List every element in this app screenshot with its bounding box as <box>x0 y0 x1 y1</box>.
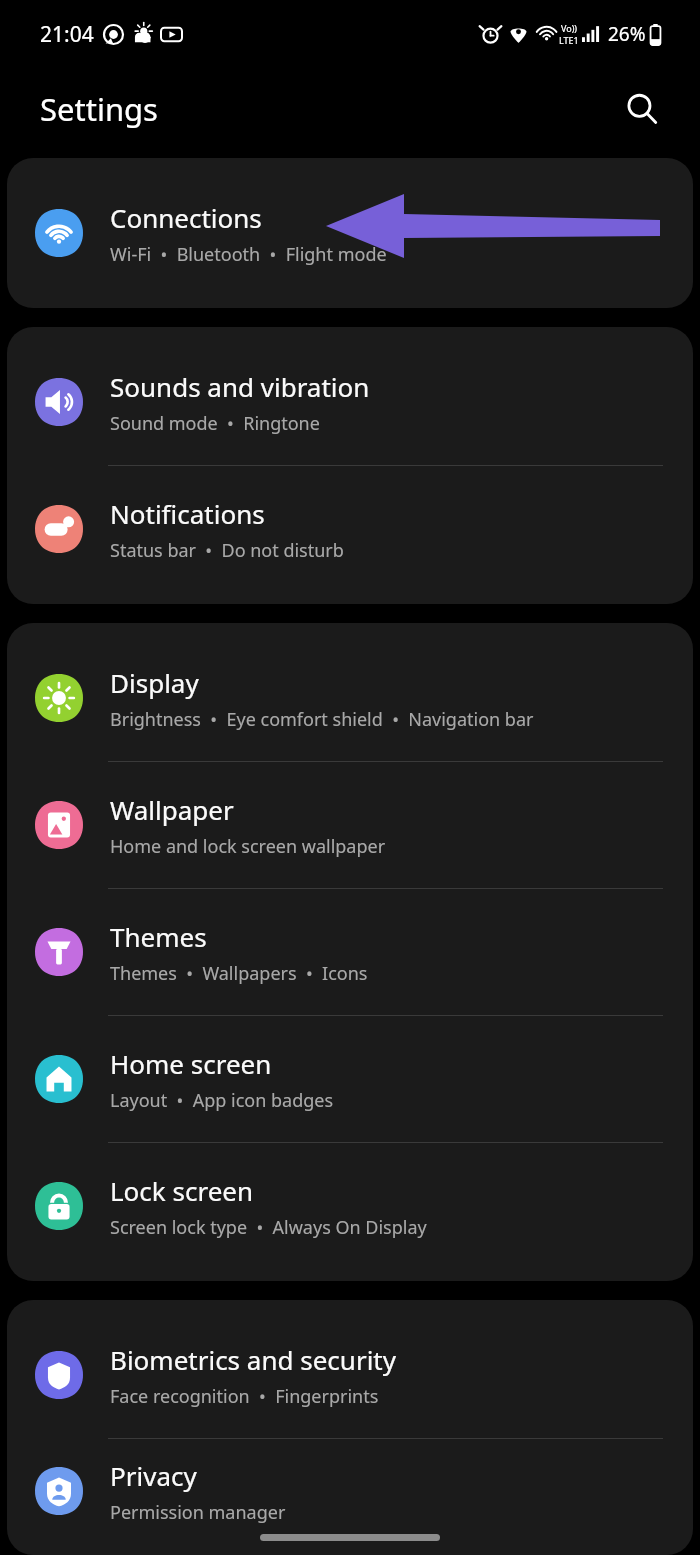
staticText: Layout • App icon badges <box>110 1088 334 1113</box>
staticText: 26% <box>608 21 646 47</box>
staticText: Home and lock screen wallpaper <box>110 834 386 859</box>
button[interactable]: Privacy <box>7 1439 693 1543</box>
staticText: Privacy <box>110 1458 197 1493</box>
button[interactable]: Search <box>614 81 670 137</box>
staticText: Screen lock type • Always On Display <box>110 1215 427 1240</box>
staticText: Sound mode • Ringtone <box>110 411 320 436</box>
staticText: Status bar • Do not disturb <box>110 538 344 563</box>
button[interactable]: Wallpaper <box>7 762 693 888</box>
button[interactable]: Biometrics and security <box>7 1312 693 1438</box>
staticText: LTE1 <box>559 34 579 46</box>
button[interactable]: Lock screen <box>7 1143 693 1269</box>
staticText: Settings <box>40 88 158 130</box>
staticText: Home screen <box>110 1046 272 1081</box>
staticText: Wallpaper <box>110 792 234 827</box>
button[interactable]: Display <box>7 635 693 761</box>
button[interactable]: Notifications <box>7 466 693 592</box>
staticText: Biometrics and security <box>110 1342 397 1377</box>
staticText: Vo)) <box>561 22 578 34</box>
staticText: Lock screen <box>110 1173 254 1208</box>
staticText: Display <box>110 665 199 700</box>
button[interactable]: Home screen <box>7 1016 693 1142</box>
staticText: Face recognition • Fingerprints <box>110 1384 379 1409</box>
staticText: Permission manager <box>110 1500 286 1525</box>
staticText: Wi-Fi • Bluetooth • Flight mode <box>110 242 387 267</box>
button[interactable]: Sounds and vibration <box>7 339 693 465</box>
staticText: Themes • Wallpapers • Icons <box>110 961 368 986</box>
staticText: Notifications <box>110 496 265 531</box>
staticText: Connections <box>110 200 262 235</box>
button[interactable]: Connections <box>7 170 693 296</box>
staticText: Sounds and vibration <box>110 369 370 404</box>
button[interactable]: Themes <box>7 889 693 1015</box>
staticText: 21:04 <box>40 20 94 49</box>
staticText: Themes <box>110 919 207 954</box>
staticText: Brightness • Eye comfort shield • Naviga… <box>110 707 534 732</box>
